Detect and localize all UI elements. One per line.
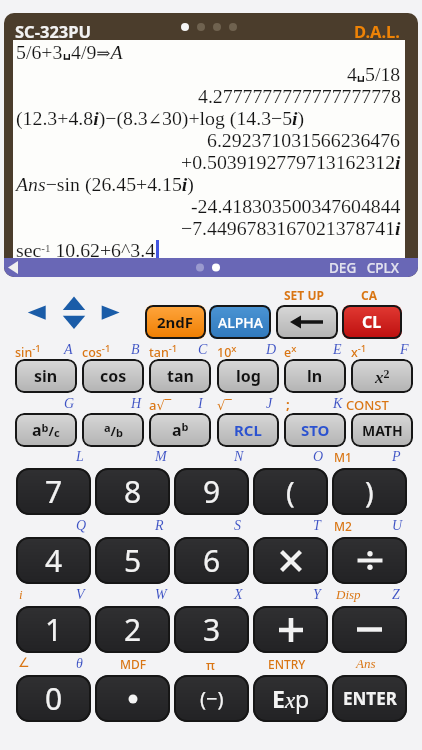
staticText: Ans <box>356 656 376 670</box>
staticText: U <box>392 518 403 534</box>
button[interactable]: sin <box>15 359 77 393</box>
staticText: sec-1 10.62+6^3.4 <box>16 239 156 258</box>
button[interactable]: MATH <box>351 413 413 447</box>
staticText: cos <box>100 365 127 387</box>
button[interactable] <box>332 537 407 584</box>
button[interactable]: ln <box>284 359 346 393</box>
staticText: 4 <box>347 63 357 85</box>
button[interactable]: 5 <box>95 537 170 584</box>
staticText: a/b <box>104 420 123 440</box>
staticText: Y <box>313 587 321 603</box>
staticText: 10x <box>217 342 237 360</box>
button[interactable]: 0 <box>16 675 91 722</box>
button[interactable]: ( <box>253 468 328 515</box>
staticText: (−) <box>200 685 224 712</box>
staticText: ln <box>307 365 323 387</box>
staticText: ; <box>286 395 290 413</box>
staticText: π <box>206 656 215 674</box>
staticText: 5/18 <box>365 63 401 85</box>
staticText: sin <box>34 365 58 387</box>
button[interactable]: x2 <box>351 359 413 393</box>
staticText: √‾ <box>217 396 232 414</box>
staticText: -24.418303500347604844 <box>191 195 401 217</box>
staticText: A <box>64 342 73 358</box>
staticText: sin-1 <box>15 342 41 360</box>
staticText: MATH <box>362 421 403 440</box>
staticText: a√‾ <box>149 396 172 414</box>
staticText: CONST <box>346 396 389 414</box>
staticText: (12.3+4.8i)−(8.3∠30)+log (14.3−5i) <box>16 107 305 129</box>
staticText: log <box>236 365 261 387</box>
button[interactable] <box>25 291 125 336</box>
staticText: STO <box>301 420 330 440</box>
staticText: I <box>198 396 203 412</box>
staticText: L <box>76 449 84 465</box>
button[interactable]: 1 <box>16 606 91 653</box>
staticText: G <box>64 396 75 412</box>
button[interactable]: (−) <box>174 675 249 722</box>
button[interactable]: 3 <box>174 606 249 653</box>
staticText: 2 <box>124 609 142 650</box>
staticText: i <box>19 587 23 601</box>
staticText: E <box>333 342 342 358</box>
button[interactable]: ab <box>149 413 211 447</box>
staticText: ab <box>172 419 189 441</box>
staticText: C <box>198 342 208 358</box>
button[interactable]: 2ndF <box>145 305 206 339</box>
button[interactable] <box>332 606 407 653</box>
staticText: Q <box>76 518 87 534</box>
button[interactable] <box>253 537 328 584</box>
staticText: ALPHA <box>218 313 263 332</box>
staticText: x2 <box>375 367 390 386</box>
staticText: Ans−sin (26.45+4.15i) <box>16 173 194 195</box>
staticText: θ <box>76 656 83 672</box>
staticText: M <box>155 449 167 465</box>
button[interactable]: CL <box>342 305 402 339</box>
button[interactable]: 6 <box>174 537 249 584</box>
staticText: 2ndF <box>157 312 194 332</box>
button[interactable]: 2 <box>95 606 170 653</box>
staticText: ex <box>284 342 297 360</box>
button[interactable]: a/b <box>82 413 144 447</box>
button[interactable]: ab/c <box>15 413 77 447</box>
button[interactable] <box>95 675 170 722</box>
button[interactable]: 7 <box>16 468 91 515</box>
button[interactable]: cos <box>82 359 144 393</box>
button[interactable]: RCL <box>217 413 279 447</box>
button[interactable]: tan <box>149 359 211 393</box>
staticText: P <box>392 449 401 465</box>
staticText: O <box>313 449 324 465</box>
staticText: CA <box>361 287 378 303</box>
staticText: B <box>131 342 140 358</box>
staticText: M1 <box>334 449 352 465</box>
staticText: 4 <box>45 540 63 581</box>
button[interactable]: 4 <box>16 537 91 584</box>
staticText: 1 <box>45 609 63 650</box>
button[interactable]: ALPHA <box>209 305 271 339</box>
staticText: MDF <box>120 656 147 672</box>
staticText: Exp <box>272 683 310 714</box>
staticText: 0 <box>45 678 63 719</box>
button[interactable]: log <box>217 359 279 393</box>
button[interactable]: ) <box>332 468 407 515</box>
staticText: 4/9⇒A <box>71 41 123 63</box>
staticText: 9 <box>203 471 221 512</box>
staticText: H <box>131 396 142 412</box>
button[interactable]: 8 <box>95 468 170 515</box>
staticText: W <box>155 587 167 603</box>
button[interactable]: Exp <box>253 675 328 722</box>
staticText: SC-323PU <box>15 20 91 42</box>
button[interactable]: STO <box>284 413 346 447</box>
staticText: tan <box>167 365 194 387</box>
button[interactable] <box>253 606 328 653</box>
staticText: RCL <box>234 420 262 440</box>
staticText: D <box>266 342 277 358</box>
staticText: ) <box>365 472 374 511</box>
staticText: 6 <box>203 540 221 581</box>
staticText: 5 <box>124 540 142 581</box>
button[interactable]: 9 <box>174 468 249 515</box>
staticText: K <box>333 396 343 412</box>
staticText: ab/c <box>32 419 60 441</box>
button[interactable] <box>276 305 338 339</box>
button[interactable]: ENTER <box>332 675 407 722</box>
